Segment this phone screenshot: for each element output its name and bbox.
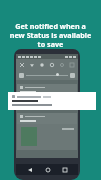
- button[interactable]: Quick setting: [59, 62, 65, 68]
- button[interactable]: Quick setting: [29, 62, 35, 68]
- button[interactable]: [17, 113, 77, 124]
- button[interactable]: Quick setting: [39, 62, 45, 68]
- button[interactable]: [8, 92, 96, 110]
- button[interactable]: [17, 84, 77, 97]
- button[interactable]: Quick setting: [19, 62, 25, 68]
- button[interactable]: Recents: [60, 165, 69, 174]
- button[interactable]: Quick setting: [49, 62, 55, 68]
- button[interactable]: Quick setting: [69, 62, 75, 68]
- button[interactable]: Home: [43, 165, 52, 174]
- staticText: Get notified when a new Status is availa…: [7, 21, 94, 49]
- button[interactable]: Back: [25, 165, 34, 174]
